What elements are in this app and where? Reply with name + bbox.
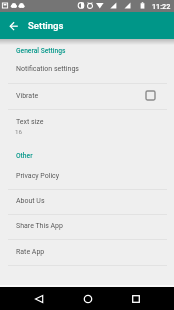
staticText: Privacy Policy (16, 172, 60, 180)
staticText: Rate App (16, 248, 45, 256)
staticText: 16 (15, 128, 22, 135)
staticText: Other (16, 152, 33, 160)
staticText: Vibrate (16, 92, 39, 100)
button[interactable]: Vibrate (0, 84, 174, 109)
button[interactable]: Privacy Policy (0, 164, 174, 189)
button[interactable]: Back (28, 287, 49, 310)
button[interactable]: Navigate up (0, 12, 26, 39)
staticText: Text size (16, 118, 44, 126)
staticText: General Settings (16, 47, 66, 55)
button[interactable]: Rate App (0, 240, 174, 265)
staticText: 11:22 (152, 2, 171, 10)
button[interactable]: About Us (0, 190, 174, 214)
button[interactable]: Text size (0, 110, 174, 141)
staticText: Share This App (16, 222, 63, 230)
button[interactable]: Home (77, 287, 98, 310)
button[interactable]: Notification settings (0, 58, 174, 83)
button[interactable]: Share This App (0, 215, 174, 239)
staticText: Settings (28, 20, 64, 31)
staticText: Notification settings (16, 65, 79, 73)
button[interactable]: Recent apps (125, 287, 146, 310)
staticText: About Us (16, 197, 45, 205)
